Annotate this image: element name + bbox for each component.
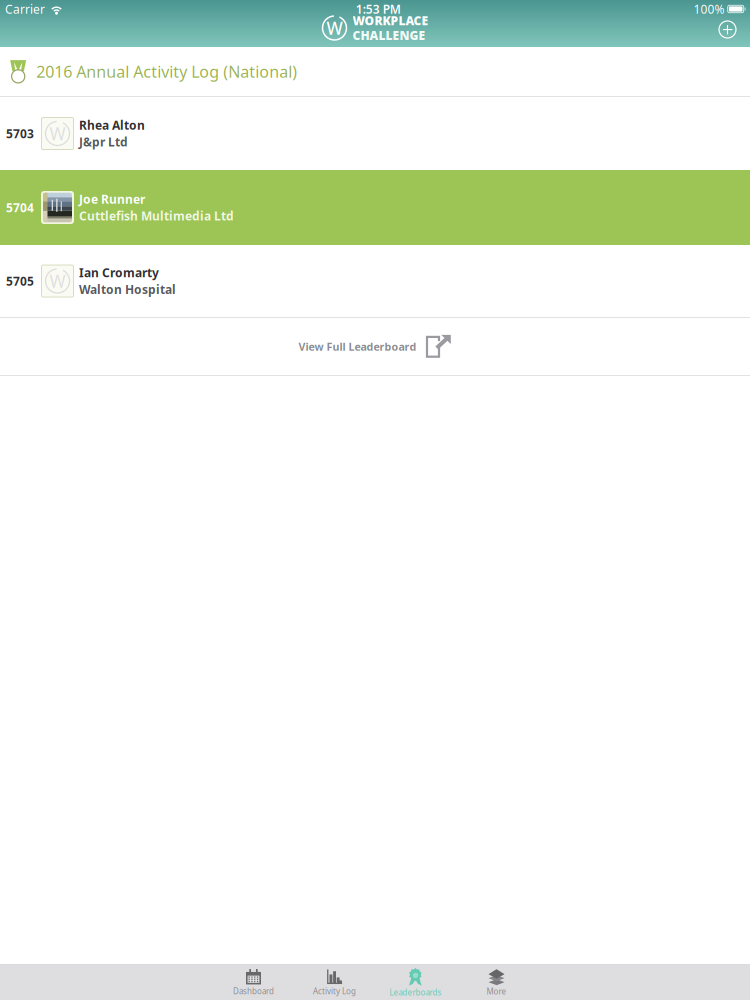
staticText: Carrier: [5, 1, 45, 17]
staticText: Walton Hospital: [79, 281, 176, 297]
button[interactable]: 5704: [0, 170, 750, 245]
button[interactable]: 5703: [0, 97, 750, 170]
staticText: W: [326, 16, 342, 39]
button[interactable]: Leaderboards: [375, 965, 456, 1000]
button[interactable]: Dashboard: [213, 965, 294, 1000]
staticText: W: [49, 122, 65, 145]
staticText: 5705: [6, 273, 34, 289]
staticText: 1:53 PM: [356, 1, 401, 17]
staticText: 5703: [6, 125, 34, 141]
staticText: Joe Runner: [79, 191, 145, 207]
button[interactable]: View Full Leaderboard: [0, 318, 750, 375]
staticText: W: [49, 269, 65, 292]
staticText: Activity Log: [313, 986, 356, 996]
staticText: 2016 Annual Activity Log (National): [36, 61, 297, 82]
button[interactable]: Activity Log: [294, 965, 375, 1000]
staticText: Dashboard: [233, 986, 274, 996]
staticText: 5704: [6, 199, 34, 215]
button[interactable]: More: [456, 965, 537, 1000]
button[interactable]: 5705: [0, 245, 750, 317]
staticText: Ian Cromarty: [79, 265, 159, 280]
staticText: View Full Leaderboard: [298, 339, 416, 354]
staticText: Cuttlefish Multimedia Ltd: [79, 208, 234, 224]
staticText: J&pr Ltd: [79, 134, 128, 150]
button[interactable]: Add activity: [712, 14, 743, 45]
staticText: More: [486, 986, 506, 997]
staticText: Leaderboards: [389, 987, 441, 998]
staticText: 100%: [693, 1, 724, 17]
staticText: CHALLENGE: [352, 27, 425, 43]
staticText: Rhea Alton: [79, 117, 145, 133]
staticText: WORKPLACE: [352, 13, 428, 28]
